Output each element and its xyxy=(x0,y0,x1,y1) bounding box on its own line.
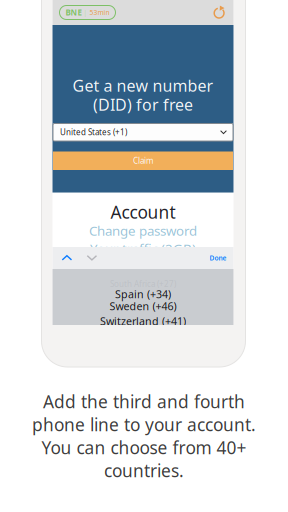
staticText: phone line to your account. xyxy=(32,413,256,436)
button[interactable]: Refresh xyxy=(212,5,225,19)
staticText: (DID) for free xyxy=(93,94,193,115)
button[interactable]: Claim xyxy=(53,151,233,170)
staticText: Sweden (+46) xyxy=(109,299,176,313)
button[interactable]: Your traffic (2GB) xyxy=(90,239,196,257)
button[interactable]: Change password xyxy=(89,221,197,239)
staticText: Claim xyxy=(133,155,153,166)
staticText: South Africa (+27) xyxy=(110,279,176,289)
staticText: Switzerland (+41) xyxy=(100,314,186,328)
button[interactable]: United States (+1) xyxy=(53,123,233,141)
staticText: Your traffic (2GB) xyxy=(90,240,196,257)
staticText: Add the third and fourth xyxy=(43,390,245,413)
staticText: You can choose from 40+ xyxy=(41,436,246,459)
staticText: 53min xyxy=(89,8,109,17)
staticText: Change password xyxy=(89,222,197,239)
button[interactable]: Previous field xyxy=(58,248,75,267)
staticText: Done xyxy=(209,254,226,262)
staticText: Spain (+34) xyxy=(115,287,171,301)
staticText: countries. xyxy=(104,459,184,482)
button[interactable]: Next field xyxy=(83,248,100,267)
staticText: United States (+1) xyxy=(60,127,127,137)
staticText: Account xyxy=(110,200,175,223)
staticText: | xyxy=(81,8,89,17)
button[interactable]: Done xyxy=(209,249,226,267)
staticText: BNE xyxy=(65,7,81,18)
staticText: Get a new number xyxy=(72,75,213,96)
